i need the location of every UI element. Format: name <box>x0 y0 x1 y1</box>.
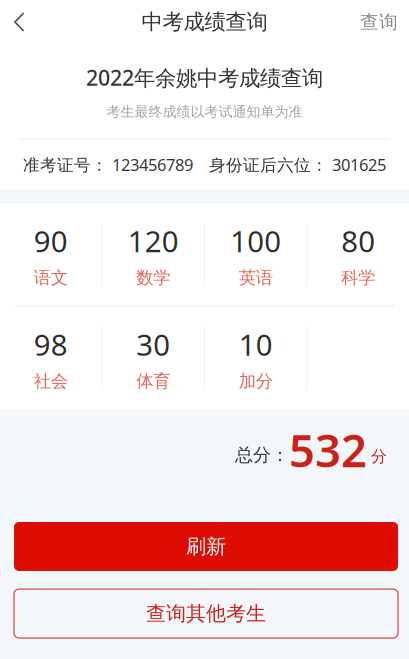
staticText: 总分： <box>235 444 289 466</box>
button[interactable]: 刷新 <box>14 522 398 571</box>
staticText: 80 <box>341 221 375 261</box>
staticText: 查询其他考生 <box>146 601 266 626</box>
staticText: 98 <box>34 324 68 364</box>
staticText: 身份证后六位： 301625 <box>209 153 386 176</box>
button[interactable]: Back <box>14 0 52 44</box>
staticText: 30 <box>136 324 170 364</box>
staticText: 分 <box>371 446 387 466</box>
button[interactable]: 查询 <box>346 0 398 44</box>
staticText: 刷新 <box>186 534 226 559</box>
staticText: 体育 <box>136 370 170 392</box>
staticText: 社会 <box>34 370 68 392</box>
staticText: 考生最终成绩以考试通知单为准 <box>106 103 302 121</box>
staticText: 英语 <box>239 267 273 289</box>
staticText: 中考成绩查询 <box>141 9 267 35</box>
staticText: 100 <box>230 221 281 261</box>
button[interactable]: 查询其他考生 <box>14 589 398 638</box>
staticText: 10 <box>239 324 273 364</box>
staticText: 查询 <box>360 10 398 34</box>
staticText: 语文 <box>34 267 68 289</box>
staticText: 加分 <box>239 370 273 392</box>
staticText: 90 <box>34 221 68 261</box>
staticText: 2022年余姚中考成绩查询 <box>86 63 323 92</box>
staticText: 120 <box>128 221 179 261</box>
staticText: 准考证号： 123456789 <box>23 153 193 176</box>
staticText: 科学 <box>341 267 375 289</box>
staticText: 数学 <box>136 267 170 289</box>
staticText: 532 <box>289 419 367 480</box>
